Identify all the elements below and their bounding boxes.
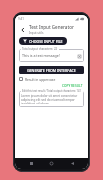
staticText: COPY RESULT	[62, 84, 83, 88]
staticText: GENERATE FROM INTERFACE	[27, 68, 76, 73]
staticText: Result in uppercase	[25, 77, 56, 81]
staticText: 9:41	[18, 17, 24, 21]
button[interactable]: Clear text	[77, 54, 81, 58]
button[interactable]: This is a test message!	[19, 49, 84, 62]
button[interactable]: Back	[18, 25, 27, 34]
staticText: Edit this text result / Total output cha…	[22, 89, 82, 93]
button[interactable]: Lorem ipsum dolor sit amet consectetur a…	[19, 91, 84, 107]
staticText: Lorem ipsum dolor sit amet consectetur a…	[21, 94, 82, 104]
staticText: This is a test message!	[22, 53, 77, 58]
button[interactable]: Home	[47, 159, 56, 168]
staticText: Test Input Generator	[29, 24, 74, 30]
button[interactable]: Result in uppercase	[19, 77, 84, 81]
staticText: Total output characters: 22	[22, 47, 58, 51]
staticText: CHOOSE INPUT FILE	[29, 39, 63, 44]
button[interactable]: GENERATE FROM INTERFACE	[19, 66, 84, 74]
staticText: Input utils	[29, 31, 44, 35]
button[interactable]: Recent apps	[27, 159, 36, 168]
button[interactable]: Back	[68, 159, 77, 168]
button[interactable]: COPY RESULT	[61, 83, 84, 89]
button[interactable]: CHOOSE INPUT FILE	[19, 37, 67, 45]
